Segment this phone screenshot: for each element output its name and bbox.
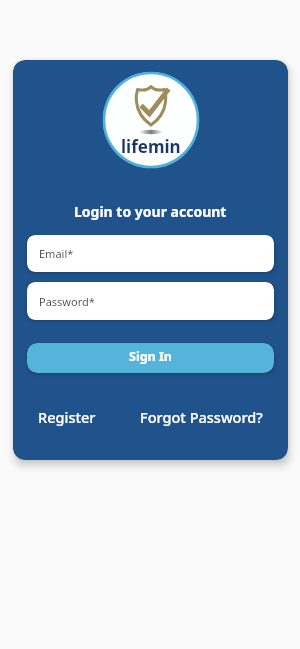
staticText: Sign In	[129, 348, 172, 365]
staticText: Password*	[39, 294, 95, 309]
button[interactable]: Email*	[27, 235, 274, 272]
staticText: Email*	[39, 246, 74, 261]
button[interactable]: Register	[38, 407, 96, 427]
staticText: Login to your account	[74, 202, 227, 221]
button[interactable]: Forgot Password?	[140, 407, 263, 427]
staticText: lifemin	[121, 135, 181, 158]
button[interactable]: Password*	[27, 282, 274, 320]
button[interactable]: Sign In	[27, 343, 274, 373]
